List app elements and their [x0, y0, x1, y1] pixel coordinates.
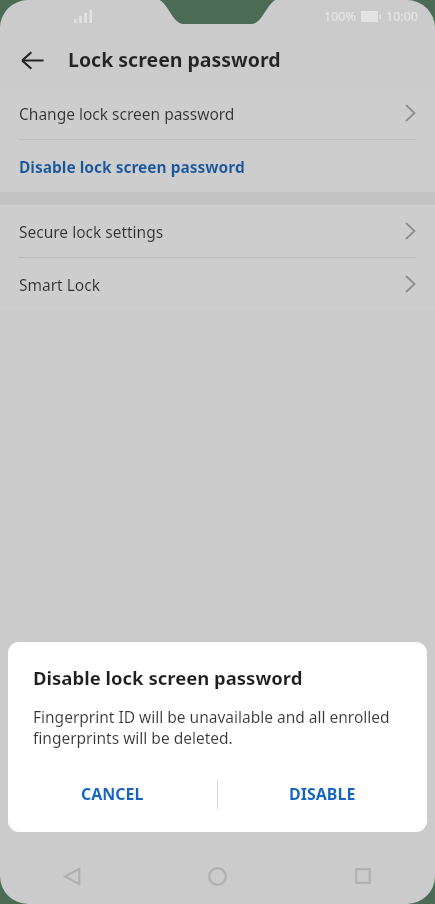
staticText: CANCEL — [81, 783, 144, 805]
staticText: Secure lock settings — [19, 221, 164, 242]
staticText: 10:00 — [386, 8, 418, 25]
button[interactable]: Secure lock settings — [0, 205, 435, 257]
staticText: 100% — [324, 8, 356, 25]
button[interactable]: Disable lock screen password — [0, 140, 435, 192]
button[interactable]: CANCEL — [8, 770, 217, 818]
button[interactable]: Back — [0, 848, 145, 904]
staticText: Disable lock screen password — [19, 156, 245, 177]
button[interactable]: Recent apps — [290, 848, 435, 904]
staticText: Smart Lock — [19, 274, 100, 295]
staticText: Change lock screen password — [19, 103, 235, 124]
button[interactable]: Back — [9, 37, 55, 83]
button[interactable]: DISABLE — [218, 770, 427, 818]
staticText: Lock screen password — [68, 46, 281, 73]
staticText: DISABLE — [289, 783, 356, 805]
button[interactable]: Change lock screen password — [0, 87, 435, 139]
button[interactable]: Smart Lock — [0, 258, 435, 310]
staticText: Fingerprint ID will be unavailable and a… — [33, 706, 405, 749]
staticText: Disable lock screen password — [33, 665, 303, 690]
